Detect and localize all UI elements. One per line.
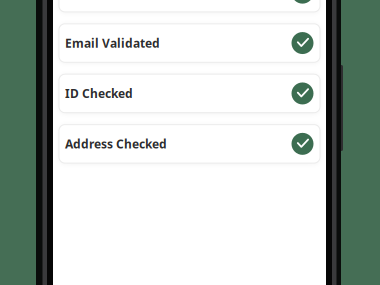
staticText: Email Validated: [65, 35, 160, 51]
button[interactable]: Email Validated: [59, 24, 320, 62]
staticText: ID Checked: [65, 85, 133, 101]
button[interactable]: ID Checked: [59, 74, 320, 113]
staticText: Address Checked: [65, 136, 167, 152]
button[interactable]: Address Checked: [59, 125, 320, 163]
button[interactable]: Phone Verified: [59, 0, 320, 12]
